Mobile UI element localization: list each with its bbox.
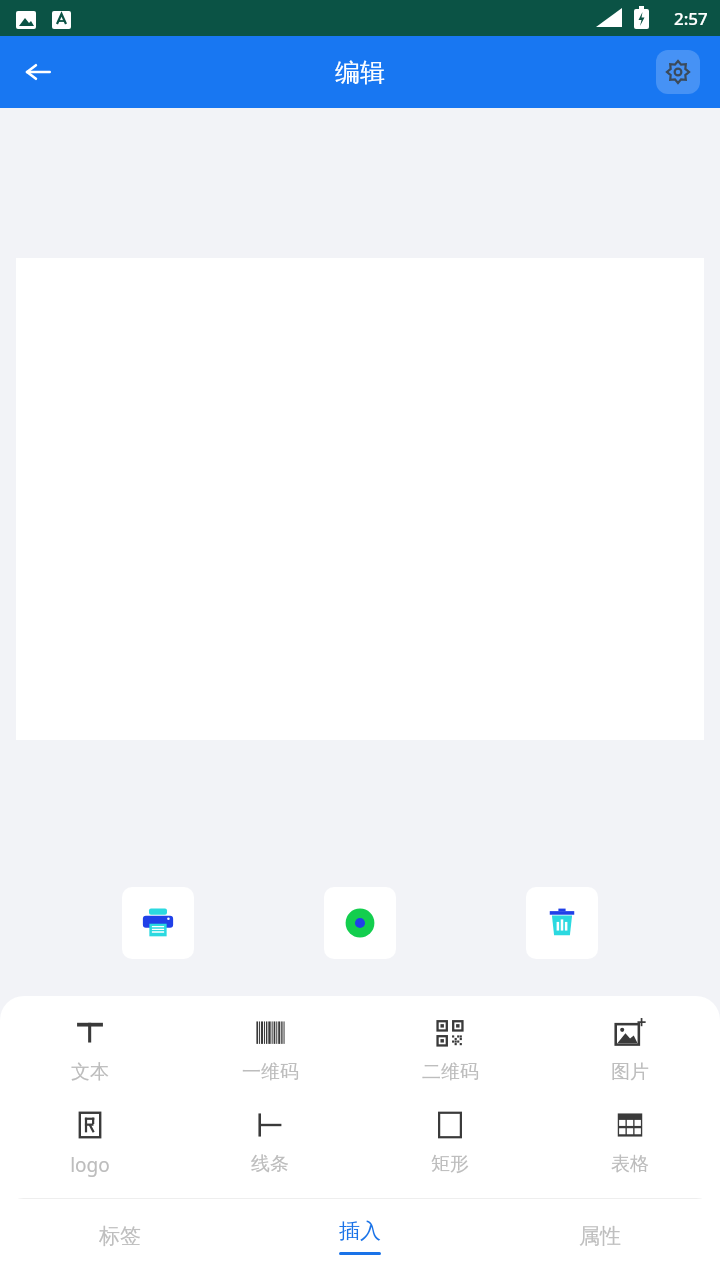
staticText: 属性	[579, 1223, 621, 1249]
staticText: 插入	[339, 1218, 381, 1244]
button[interactable]: Back	[10, 44, 66, 100]
button[interactable]: Settings	[656, 50, 700, 94]
staticText: 矩形	[431, 1152, 469, 1176]
button[interactable]: Print	[122, 887, 194, 959]
staticText: 标签	[99, 1223, 141, 1249]
staticText: logo	[70, 1152, 110, 1178]
staticText: 线条	[251, 1152, 289, 1176]
button[interactable]: 图片	[540, 1010, 720, 1084]
button[interactable]: 线条	[180, 1102, 360, 1176]
staticText: 二维码	[422, 1060, 479, 1084]
button[interactable]: 插入	[240, 1198, 480, 1274]
button[interactable]: 二维码	[360, 1010, 540, 1084]
button[interactable]: 文本	[0, 1010, 180, 1084]
staticText: 文本	[71, 1060, 109, 1084]
button[interactable]: 矩形	[360, 1102, 540, 1176]
button[interactable]: logo	[0, 1102, 180, 1178]
staticText: 2:57	[674, 7, 708, 30]
button[interactable]: 一维码	[180, 1010, 360, 1084]
button[interactable]: 表格	[540, 1102, 720, 1176]
button[interactable]: Record	[324, 887, 396, 959]
button[interactable]: 属性	[480, 1198, 720, 1274]
staticText: 编辑	[335, 57, 385, 88]
staticText: 图片	[611, 1060, 649, 1084]
staticText: 表格	[611, 1152, 649, 1176]
button[interactable]: 标签	[0, 1198, 240, 1274]
button[interactable]: Delete	[526, 887, 598, 959]
staticText: 一维码	[242, 1060, 299, 1084]
